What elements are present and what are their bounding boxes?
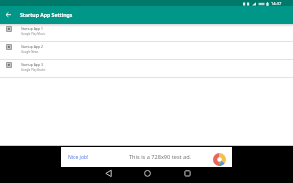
staticText: Google Play Books: [21, 68, 46, 72]
button[interactable]: Nice job!: [61, 147, 232, 167]
staticText: Nice job!: [68, 154, 89, 161]
staticText: Startup App Settings: [20, 11, 73, 18]
button[interactable]: Startup App 1: [0, 24, 293, 41]
staticText: Google News: [21, 50, 39, 54]
staticText: This is a 728x90 test ad.: [129, 153, 192, 161]
staticText: Startup App 3: [21, 62, 43, 67]
staticText: 14:37: [271, 1, 282, 6]
button[interactable]: [5, 12, 11, 18]
button[interactable]: Startup App 2: [0, 42, 293, 59]
button[interactable]: Startup App 3: [0, 60, 293, 77]
staticText: Startup App 1: [21, 26, 43, 31]
staticText: Google Play Music: [21, 32, 45, 36]
staticText: Startup App 2: [21, 44, 43, 49]
